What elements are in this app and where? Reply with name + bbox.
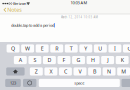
button[interactable]: B	[88, 67, 101, 75]
button[interactable]: T	[65, 44, 78, 52]
staticText: D	[47, 56, 51, 64]
button[interactable]: K	[116, 56, 129, 64]
button[interactable]: X	[44, 67, 57, 75]
button[interactable]: Notes	[0, 5, 25, 14]
staticText: M	[121, 68, 126, 75]
button[interactable]: H	[87, 56, 99, 64]
button[interactable]: G	[72, 56, 85, 64]
staticText: F	[62, 56, 65, 64]
staticText: 10:03 AM	[70, 0, 87, 5]
staticText: space	[74, 80, 84, 86]
button[interactable]: W	[21, 44, 34, 52]
staticText: S	[33, 56, 36, 64]
staticText: C	[64, 68, 67, 75]
button[interactable]: Y	[79, 44, 92, 52]
staticText: R	[55, 45, 58, 52]
button[interactable]: D	[43, 56, 56, 64]
staticText: O	[127, 45, 130, 52]
button[interactable]: N	[103, 67, 115, 75]
staticText: U	[98, 45, 102, 52]
button[interactable]: 123	[5, 79, 21, 87]
button[interactable]: O	[123, 44, 130, 52]
staticText: T	[70, 45, 73, 52]
staticText: E	[41, 45, 44, 52]
button[interactable]: J	[101, 56, 114, 64]
staticText: J	[107, 56, 108, 64]
staticText: 123	[10, 80, 16, 86]
staticText: double-tap to add a period	[11, 23, 54, 28]
staticText: W	[25, 45, 30, 52]
staticText: H	[91, 56, 95, 64]
button[interactable]: Next keyboard	[23, 79, 36, 87]
staticText: G	[76, 56, 80, 64]
staticText: V	[78, 68, 81, 75]
staticText: March 12, 2014 10:03 AM	[60, 15, 97, 19]
button[interactable]: F	[57, 56, 70, 64]
staticText: Q	[11, 45, 15, 52]
staticText: N	[107, 68, 111, 75]
button[interactable]: C	[59, 67, 72, 75]
staticText: Y	[84, 45, 87, 52]
button[interactable]: space	[39, 79, 120, 87]
staticText: I	[114, 45, 116, 52]
button[interactable]: Q	[7, 44, 19, 52]
button[interactable]: E	[36, 44, 49, 52]
staticText: Verizon	[13, 1, 26, 6]
button[interactable]: Shift	[6, 67, 25, 75]
staticText: A	[19, 56, 22, 64]
button[interactable]: I	[108, 44, 121, 52]
staticText: Notes	[7, 6, 22, 13]
button[interactable]: A	[14, 56, 27, 64]
button[interactable]: Z	[30, 67, 43, 75]
staticText: Z	[35, 68, 38, 75]
staticText: K	[121, 56, 124, 64]
button[interactable]: V	[73, 67, 86, 75]
staticText: X	[49, 68, 52, 75]
button[interactable]: R	[50, 44, 63, 52]
button[interactable]: U	[94, 44, 107, 52]
button[interactable]: S	[28, 56, 41, 64]
staticText: B	[93, 68, 96, 75]
button[interactable]: M	[117, 67, 130, 75]
